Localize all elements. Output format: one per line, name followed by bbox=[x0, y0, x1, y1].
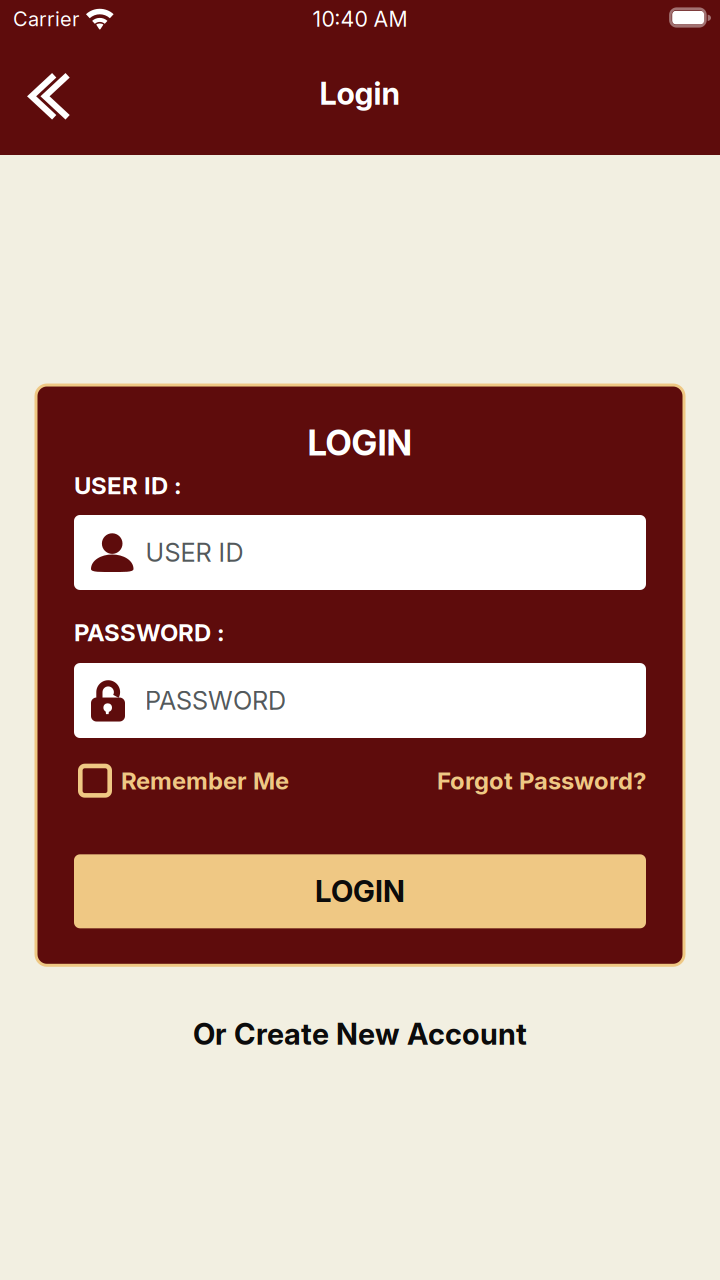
staticText: PASSWORD : bbox=[74, 618, 225, 647]
button[interactable]: LOGIN bbox=[74, 854, 646, 928]
staticText: Forgot Password? bbox=[437, 766, 646, 795]
button[interactable]: Back bbox=[0, 53, 102, 139]
staticText: USER ID bbox=[145, 537, 243, 568]
staticText: LOGIN bbox=[307, 422, 412, 464]
staticText: LOGIN bbox=[315, 874, 405, 909]
staticText: Remember Me bbox=[121, 766, 289, 795]
staticText: PASSWORD bbox=[145, 685, 286, 716]
staticText: Login bbox=[319, 75, 400, 112]
staticText: 10:40 AM bbox=[312, 6, 407, 32]
staticText: Carrier bbox=[13, 7, 79, 31]
button[interactable]: Remember Me bbox=[74, 764, 289, 798]
staticText: Or Create New Account bbox=[193, 1016, 527, 1052]
button[interactable]: Forgot Password? bbox=[437, 766, 646, 795]
staticText: USER ID : bbox=[74, 471, 182, 500]
